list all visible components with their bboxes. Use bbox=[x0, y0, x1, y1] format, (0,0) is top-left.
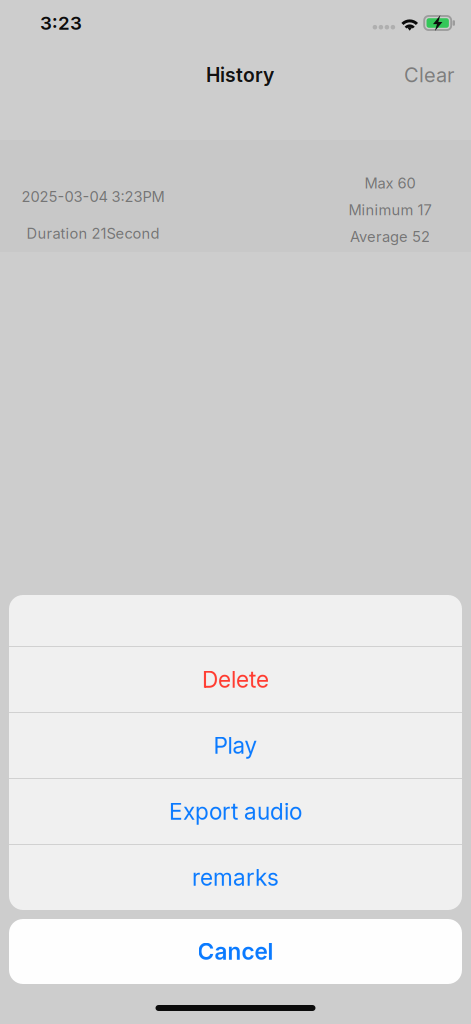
staticText: remarks bbox=[192, 864, 279, 891]
button[interactable]: Export audio bbox=[9, 778, 462, 844]
staticText: History bbox=[206, 63, 274, 87]
staticText: Clear bbox=[404, 63, 454, 87]
button[interactable]: 2025-03-04 3:23PM bbox=[0, 140, 471, 252]
staticText: 2025-03-04 3:23PM bbox=[21, 188, 164, 205]
staticText: Duration 21Second bbox=[26, 224, 159, 242]
staticText: Cancel bbox=[197, 938, 273, 965]
button[interactable]: Play bbox=[9, 712, 462, 778]
staticText: Play bbox=[213, 732, 257, 759]
button[interactable]: Delete bbox=[9, 646, 462, 712]
staticText: Export audio bbox=[169, 798, 302, 825]
button[interactable]: Cancel bbox=[9, 919, 462, 984]
staticText: Max 60 bbox=[364, 174, 415, 192]
staticText: Average 52 bbox=[350, 228, 430, 246]
button[interactable]: remarks bbox=[9, 844, 462, 910]
button[interactable]: Clear bbox=[396, 53, 462, 97]
staticText: Minimum 17 bbox=[348, 201, 431, 219]
staticText: Delete bbox=[202, 666, 269, 693]
staticText: 3:23 bbox=[40, 12, 82, 34]
